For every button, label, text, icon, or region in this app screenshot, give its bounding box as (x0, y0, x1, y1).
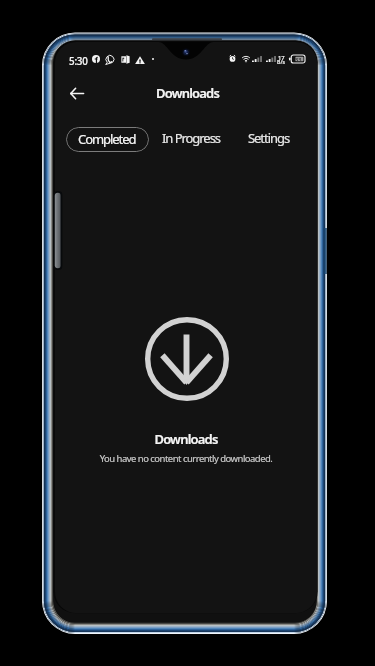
staticText: B/s (277, 58, 285, 65)
staticText: Settings (248, 129, 290, 147)
button[interactable]: Settings (243, 125, 295, 150)
staticText: 17 (278, 54, 285, 62)
staticText: In Progress (162, 129, 221, 147)
button[interactable]: Completed (66, 127, 149, 152)
staticText: Completed (78, 130, 136, 148)
button[interactable]: In Progress (158, 125, 225, 150)
staticText: You have no content currently downloaded… (55, 452, 317, 465)
staticText: 5:30 (69, 55, 88, 68)
staticText: Downloads (156, 84, 220, 102)
staticText: 33 (295, 56, 302, 64)
staticText: Downloads (55, 430, 317, 448)
button[interactable]: Back (65, 81, 89, 105)
